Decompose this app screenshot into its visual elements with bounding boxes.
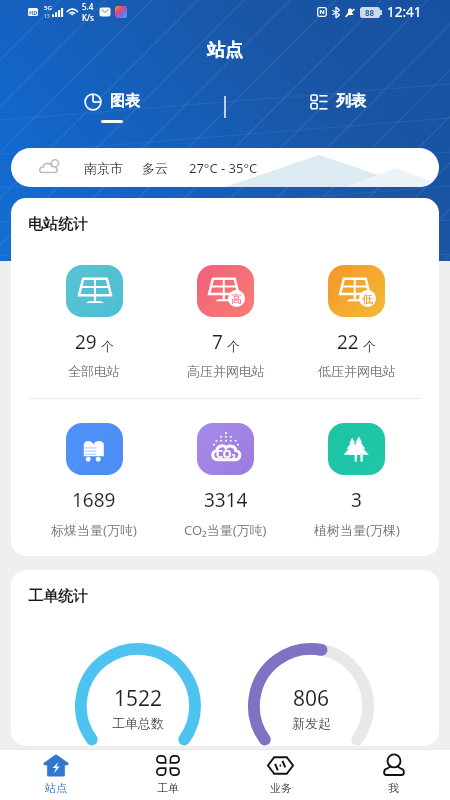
staticText: 标煤当量(万吨) xyxy=(51,521,137,539)
button[interactable]: 29 xyxy=(28,265,160,379)
staticText: 29 xyxy=(75,329,97,355)
staticText: 工单总数 xyxy=(112,715,164,731)
staticText: 高 xyxy=(231,292,242,306)
staticText: 27°C - 35°C xyxy=(189,159,258,177)
button[interactable]: 图表 xyxy=(0,92,224,126)
staticText: 业务 xyxy=(270,781,292,795)
staticText: 22 xyxy=(337,329,359,355)
staticText: 低压并网电站 xyxy=(318,363,396,379)
staticText: 个 xyxy=(101,338,114,354)
staticText: 列表 xyxy=(336,92,366,111)
button[interactable]: 低 xyxy=(291,265,422,379)
staticText: 工单 xyxy=(157,781,179,795)
staticText: 高压并网电站 xyxy=(187,363,265,379)
button[interactable]: 工单 xyxy=(112,750,224,800)
staticText: 5.4 xyxy=(82,1,94,12)
staticText: 多云 xyxy=(142,160,168,176)
staticText: 全部电站 xyxy=(68,363,120,379)
staticText: 站点 xyxy=(45,781,67,795)
staticText: 3 xyxy=(351,487,362,513)
staticText: 新发起 xyxy=(292,715,331,731)
staticText: 站点 xyxy=(207,39,243,62)
button[interactable]: 3 xyxy=(291,423,422,539)
button[interactable]: 南京市 xyxy=(11,148,439,187)
staticText: 个 xyxy=(363,338,376,354)
staticText: 1522 xyxy=(114,684,163,713)
staticText: CO₂当量(万吨) xyxy=(184,521,267,539)
staticText: 我 xyxy=(388,781,399,795)
staticText: 5G xyxy=(44,4,52,12)
staticText: 电站统计 xyxy=(28,215,88,234)
staticText: 13 xyxy=(44,13,50,20)
staticText: CO₂ xyxy=(216,446,236,461)
button[interactable]: 列表 xyxy=(226,92,450,126)
staticText: 植树当量(万棵) xyxy=(314,521,400,539)
button[interactable]: 高 xyxy=(160,265,291,379)
staticText: K/s xyxy=(82,12,94,23)
staticText: 图表 xyxy=(110,92,140,111)
button[interactable]: 站点 xyxy=(0,750,112,800)
staticText: 1689 xyxy=(72,487,116,513)
button[interactable]: 业务 xyxy=(224,750,337,800)
staticText: 3314 xyxy=(204,487,248,513)
button[interactable]: CO₂ xyxy=(160,423,291,539)
staticText: HD xyxy=(29,9,38,16)
staticText: 低 xyxy=(362,292,373,306)
staticText: 88 xyxy=(365,7,375,18)
staticText: 806 xyxy=(293,684,330,713)
staticText: 12:41 xyxy=(387,3,422,21)
staticText: 南京市 xyxy=(84,160,123,176)
button[interactable]: 我 xyxy=(337,750,450,800)
staticText: 7 xyxy=(212,329,223,355)
staticText: 工单统计 xyxy=(28,587,88,606)
staticText: 个 xyxy=(227,338,240,354)
button[interactable]: 1689 xyxy=(28,423,160,539)
